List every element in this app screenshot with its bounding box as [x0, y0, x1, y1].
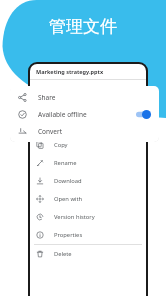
button[interactable]: Delete — [30, 245, 146, 263]
other: Version history — [36, 213, 44, 221]
staticText: Version history — [54, 213, 95, 221]
staticText: Available offline — [38, 110, 87, 119]
button[interactable]: Available offline — [10, 106, 159, 123]
staticText: Copy — [54, 141, 68, 149]
staticText: Move — [54, 123, 69, 131]
button[interactable]: Download — [30, 172, 146, 190]
staticText: 管理文件 — [49, 16, 117, 37]
other: Download — [36, 177, 44, 185]
staticText: Delete — [54, 250, 72, 258]
other: Copy — [36, 141, 44, 149]
other: Delete — [36, 250, 44, 258]
other: Available offline — [18, 110, 27, 119]
button[interactable]: Version history — [30, 208, 146, 226]
staticText: Properties — [54, 231, 83, 239]
staticText: Marketing strategy.pptx — [36, 68, 104, 75]
other: Rename — [36, 159, 44, 167]
other: Convert — [18, 127, 27, 136]
other: Move — [36, 123, 44, 131]
button[interactable]: Share — [10, 89, 159, 106]
button[interactable]: Properties — [30, 226, 146, 244]
button[interactable]: Copy — [30, 136, 146, 154]
button[interactable]: Open with — [30, 190, 146, 208]
button[interactable]: Convert — [10, 123, 159, 140]
button[interactable]: Available offline toggle — [136, 110, 151, 119]
staticText: Download — [54, 177, 82, 185]
staticText: Share — [38, 93, 56, 102]
staticText: Open with — [54, 195, 83, 203]
button[interactable]: Rename — [30, 154, 146, 172]
staticText: Convert — [38, 127, 63, 136]
other: Share — [18, 93, 27, 102]
other: Properties — [36, 231, 44, 239]
button[interactable]: Move — [30, 118, 146, 136]
other: Open with — [36, 195, 44, 203]
staticText: Rename — [54, 159, 77, 167]
